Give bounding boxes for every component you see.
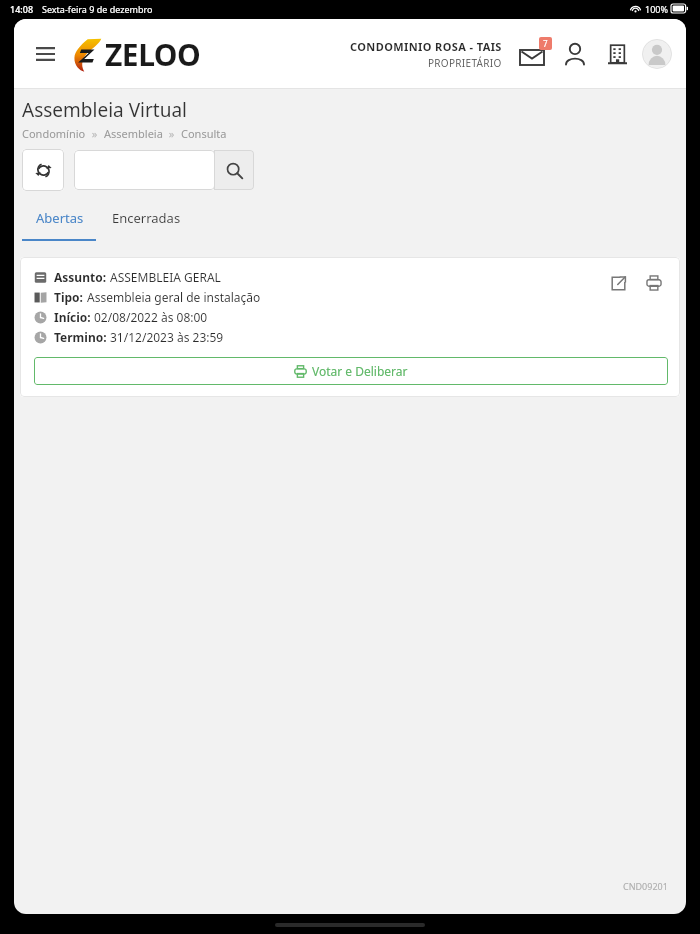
button[interactable]: Imprimir <box>640 269 668 297</box>
button[interactable]: Conta <box>642 39 672 69</box>
staticText: Assunto: <box>54 269 110 285</box>
staticText: Abertas <box>36 209 84 227</box>
staticText: CND09201 <box>623 880 668 892</box>
button[interactable]: Pesquisar <box>214 150 254 190</box>
staticText: Tipo: <box>54 289 87 305</box>
button[interactable]: Abrir <box>604 269 632 297</box>
staticText: PROPRIETÁRIO <box>428 56 502 70</box>
staticText: ASSEMBLEIA GERAL <box>110 269 221 285</box>
staticText: Encerradas <box>112 209 181 227</box>
staticText: ZELOO <box>105 34 201 75</box>
button[interactable]: Condomínio <box>600 37 634 71</box>
staticText: CONDOMINIO ROSA - TAIS <box>350 39 502 54</box>
button[interactable]: Encerradas <box>98 203 195 233</box>
staticText: » <box>86 126 104 141</box>
staticText: 100% <box>645 3 668 15</box>
staticText: 31/12/2023 às 23:59 <box>110 329 224 345</box>
button[interactable]: Votar e Deliberar <box>34 357 668 385</box>
button[interactable]: Mensagens <box>514 36 550 72</box>
staticText: Consulta <box>181 126 227 141</box>
staticText: 02/08/2022 às 08:00 <box>94 309 208 325</box>
staticText: Termino: <box>54 329 110 345</box>
button[interactable]: Menu <box>28 37 62 71</box>
staticText: Início: <box>54 309 94 325</box>
staticText: Votar e Deliberar <box>312 363 408 379</box>
button[interactable] <box>74 150 215 190</box>
button[interactable]: Perfil <box>558 37 592 71</box>
staticText: Assembleia <box>104 126 163 141</box>
staticText: 14:08 <box>10 3 34 15</box>
button[interactable]: Abertas <box>22 203 98 233</box>
staticText: » <box>163 126 181 141</box>
staticText: Assembleia Virtual <box>22 97 187 123</box>
staticText: Condomínio <box>22 126 86 141</box>
staticText: Sexta-feira 9 de dezembro <box>42 3 153 15</box>
button[interactable]: Atualizar <box>22 149 64 191</box>
staticText: 7 <box>543 38 548 49</box>
staticText: Assembleia geral de instalação <box>87 289 261 305</box>
